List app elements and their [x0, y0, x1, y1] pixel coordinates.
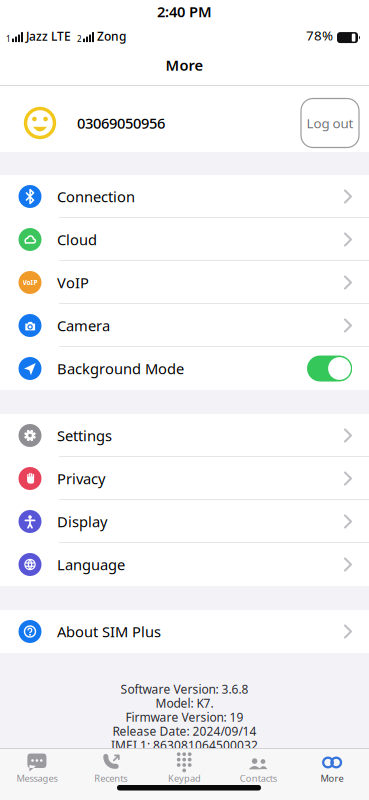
- staticText: Release Date: 2024/09/14: [112, 723, 256, 739]
- button[interactable]: Keypad: [148, 753, 221, 784]
- staticText: Recents: [94, 772, 127, 784]
- staticText: More: [321, 772, 344, 784]
- button[interactable]: Settings: [0, 414, 369, 457]
- button[interactable]: Messages: [0, 753, 74, 784]
- staticText: 78%: [306, 26, 333, 44]
- staticText: More: [165, 55, 203, 75]
- staticText: 1: [6, 33, 11, 44]
- staticText: Privacy: [57, 469, 105, 488]
- button[interactable]: More: [295, 753, 369, 784]
- staticText: VoIP: [22, 278, 37, 287]
- staticText: Keypad: [168, 772, 201, 784]
- staticText: Settings: [57, 426, 112, 445]
- staticText: Display: [57, 512, 107, 531]
- button[interactable]: Display: [0, 500, 369, 543]
- staticText: Software Version: 3.6.8: [120, 681, 248, 697]
- staticText: IMEI 1: 863081064500032: [111, 737, 258, 753]
- button[interactable]: Camera: [0, 304, 369, 347]
- staticText: Cloud: [57, 230, 97, 249]
- button[interactable]: Recents: [74, 753, 148, 784]
- staticText: 03069050956: [77, 113, 165, 133]
- staticText: Language: [57, 555, 125, 574]
- button[interactable]: Log out: [301, 98, 359, 147]
- staticText: 2: [77, 33, 82, 44]
- staticText: Model: K7.: [155, 695, 213, 711]
- staticText: About SIM Plus: [57, 622, 161, 641]
- staticText: Messages: [16, 772, 57, 784]
- button[interactable]: About SIM Plus: [0, 610, 369, 653]
- button[interactable]: Privacy: [0, 457, 369, 500]
- button[interactable]: VoIP: [0, 261, 369, 304]
- staticText: Connection: [57, 187, 135, 206]
- staticText: 2:40 PM: [157, 2, 212, 21]
- button[interactable]: Connection: [0, 175, 369, 218]
- staticText: Log out: [306, 114, 353, 132]
- button[interactable]: Cloud: [0, 218, 369, 261]
- staticText: Jazz LTE: [26, 28, 71, 44]
- staticText: Firmware Version: 19: [125, 709, 243, 725]
- button[interactable]: Background Mode: [307, 355, 352, 381]
- staticText: Camera: [57, 316, 110, 335]
- button[interactable]: Contacts: [221, 753, 295, 784]
- staticText: Zong: [97, 28, 126, 44]
- staticText: Contacts: [240, 772, 277, 784]
- button[interactable]: Language: [0, 543, 369, 586]
- staticText: Background Mode: [57, 359, 184, 378]
- staticText: VoIP: [57, 273, 89, 292]
